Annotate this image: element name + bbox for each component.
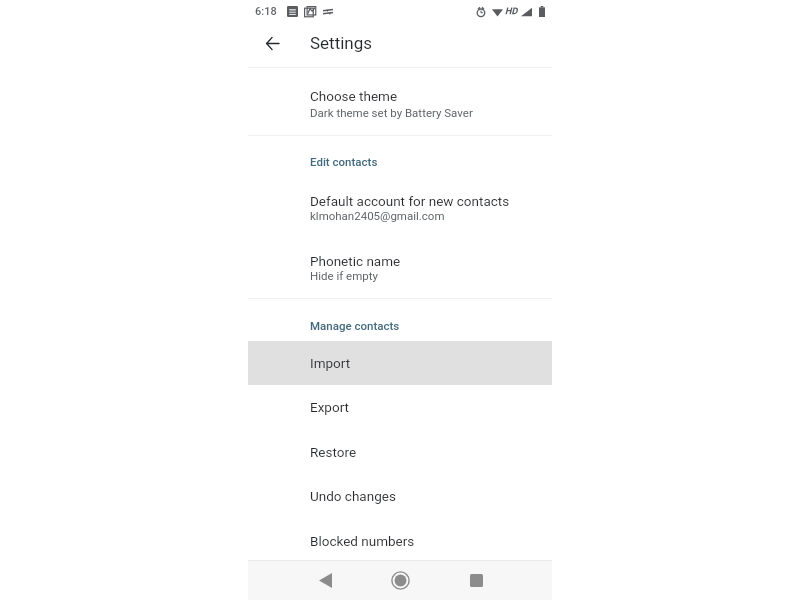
staticText: 6:18: [255, 5, 277, 18]
button[interactable]: Home: [381, 561, 419, 599]
button[interactable]: Manage contacts: [248, 314, 552, 336]
button[interactable]: Default account for new contacts: [248, 189, 552, 233]
staticText: Restore: [310, 444, 357, 460]
button[interactable]: Undo changes: [248, 473, 552, 518]
staticText: Export: [310, 399, 349, 415]
staticText: Choose theme: [310, 88, 398, 104]
staticText: Manage contacts: [310, 319, 400, 332]
staticText: klmohan2405@gmail.com: [310, 209, 445, 222]
button[interactable]: Recent apps: [457, 560, 495, 600]
staticText: Default account for new contacts: [310, 193, 510, 209]
button[interactable]: Blocked numbers: [248, 518, 552, 563]
button[interactable]: Phonetic name: [248, 249, 552, 293]
staticText: Hide if empty: [310, 269, 378, 282]
staticText: Dark theme set by Battery Saver: [310, 106, 473, 119]
button[interactable]: Export: [248, 384, 552, 429]
staticText: Settings: [310, 33, 373, 53]
staticText: HD: [505, 6, 518, 17]
staticText: Undo changes: [310, 488, 396, 504]
button[interactable]: Import: [248, 341, 552, 385]
button[interactable]: Choose theme: [248, 84, 552, 128]
button[interactable]: Edit contacts: [248, 150, 552, 172]
staticText: Blocked numbers: [310, 533, 415, 549]
staticText: Import: [310, 355, 351, 371]
button[interactable]: Back: [256, 27, 288, 59]
staticText: Phonetic name: [310, 253, 401, 269]
button[interactable]: Restore: [248, 429, 552, 474]
button[interactable]: Back: [306, 560, 344, 600]
staticText: Edit contacts: [310, 155, 378, 168]
